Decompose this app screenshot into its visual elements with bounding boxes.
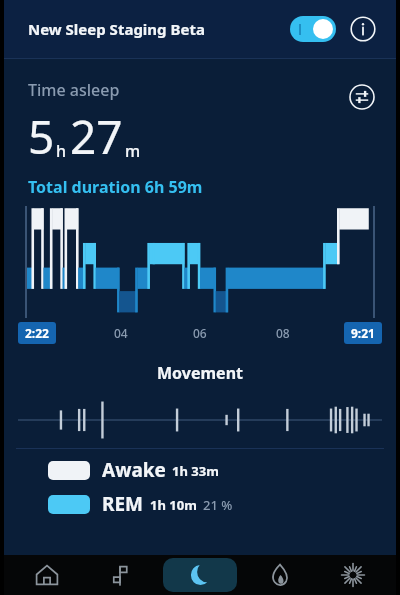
staticText: 04 — [114, 325, 128, 341]
button[interactable]: Awake — [48, 457, 396, 483]
staticText: 1h 33m — [172, 462, 219, 480]
staticText: 5 — [28, 105, 55, 168]
staticText: Time asleep — [28, 79, 120, 101]
staticText: New Sleep Staging Beta — [28, 19, 205, 39]
staticText: 21 % — [203, 496, 233, 514]
staticText: REM — [102, 491, 144, 517]
button[interactable]: Nutrition — [89, 558, 151, 592]
staticText: 2:22 — [25, 325, 49, 341]
button[interactable]: Home — [16, 558, 78, 592]
button[interactable]: Readiness — [322, 558, 384, 592]
staticText: 06 — [193, 325, 207, 341]
button[interactable]: Adjust settings — [346, 81, 378, 113]
button[interactable]: Toggle new sleep staging — [290, 16, 336, 42]
staticText: Awake — [102, 457, 166, 483]
staticText: m — [125, 140, 141, 162]
staticText: 1h 10m — [150, 496, 197, 514]
button[interactable]: REM — [48, 491, 396, 517]
staticText: 27 — [70, 105, 123, 168]
staticText: Movement — [4, 362, 396, 384]
staticText: h — [56, 140, 67, 162]
staticText: 9:21 — [351, 325, 375, 341]
button[interactable]: Sleep — [163, 558, 237, 592]
staticText: Total duration 6h 59m — [28, 176, 203, 198]
button[interactable]: Activity — [249, 558, 311, 592]
button[interactable]: Information — [348, 14, 378, 44]
staticText: 08 — [276, 325, 290, 341]
